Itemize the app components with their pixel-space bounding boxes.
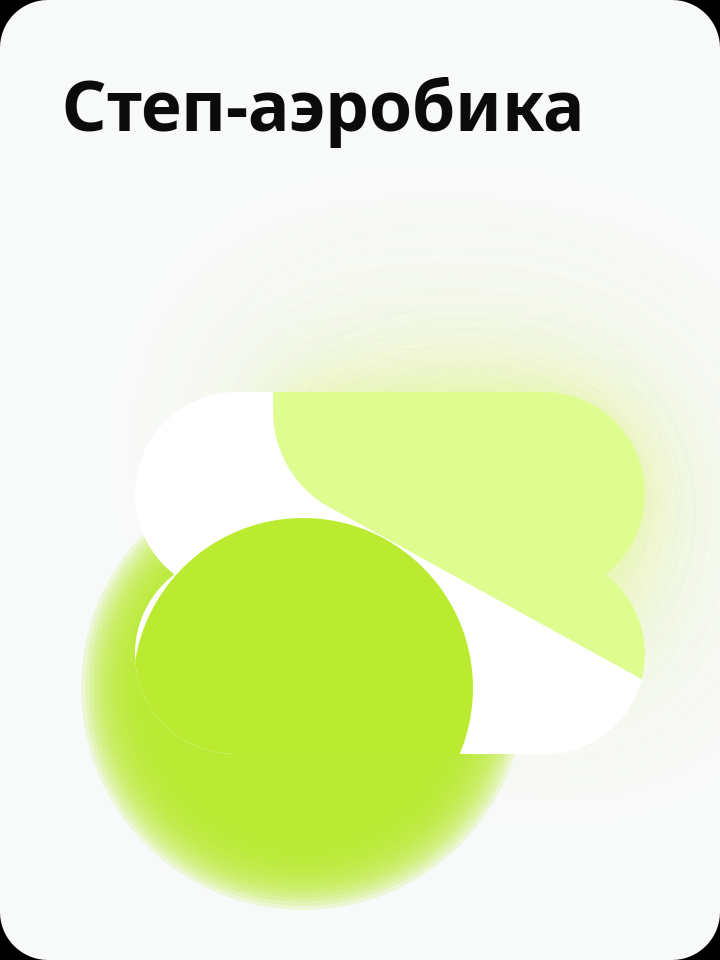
staticText: Степ-аэробика xyxy=(62,58,584,150)
